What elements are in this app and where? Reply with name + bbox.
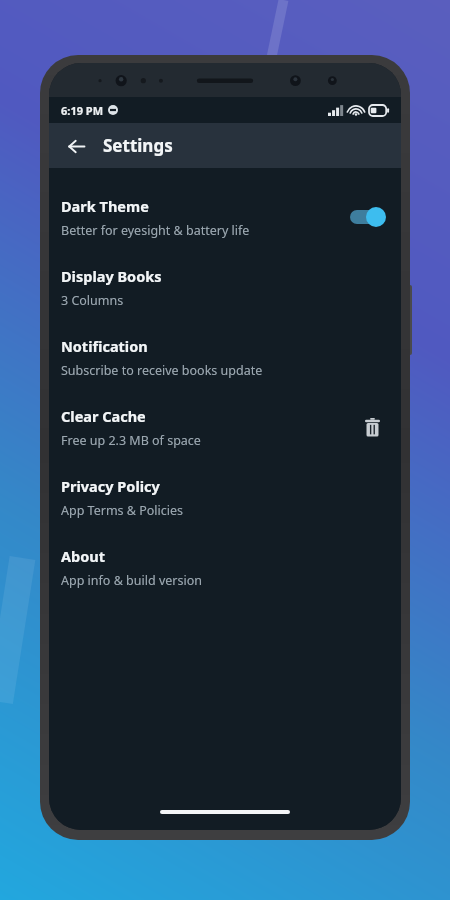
staticText: Privacy Policy (61, 476, 160, 496)
staticText: 3 Columns (61, 292, 124, 309)
staticText: App info & build version (61, 572, 202, 589)
staticText: App Terms & Policies (61, 502, 184, 519)
button[interactable]: Clear cache (355, 410, 389, 444)
staticText: Clear Cache (61, 406, 146, 426)
staticText: Free up 2.3 MB of space (61, 432, 201, 449)
staticText: Settings (103, 134, 173, 157)
button[interactable]: Dark Theme toggle (349, 204, 389, 230)
staticText: 6:19 PM (61, 103, 104, 118)
button[interactable]: About (49, 532, 401, 602)
button[interactable]: Clear Cache (49, 392, 401, 462)
staticText: Display Books (61, 266, 162, 286)
button[interactable]: Privacy Policy (49, 462, 401, 532)
staticText: About (61, 546, 105, 566)
staticText: Subscribe to receive books update (61, 362, 263, 379)
button[interactable]: Display Books (49, 252, 401, 322)
staticText: Better for eyesight & battery life (61, 222, 250, 239)
staticText: Dark Theme (61, 196, 149, 216)
button[interactable]: Back (57, 127, 95, 165)
button[interactable]: Notification (49, 322, 401, 392)
button[interactable]: Dark Theme (49, 182, 401, 252)
staticText: Notification (61, 336, 148, 356)
